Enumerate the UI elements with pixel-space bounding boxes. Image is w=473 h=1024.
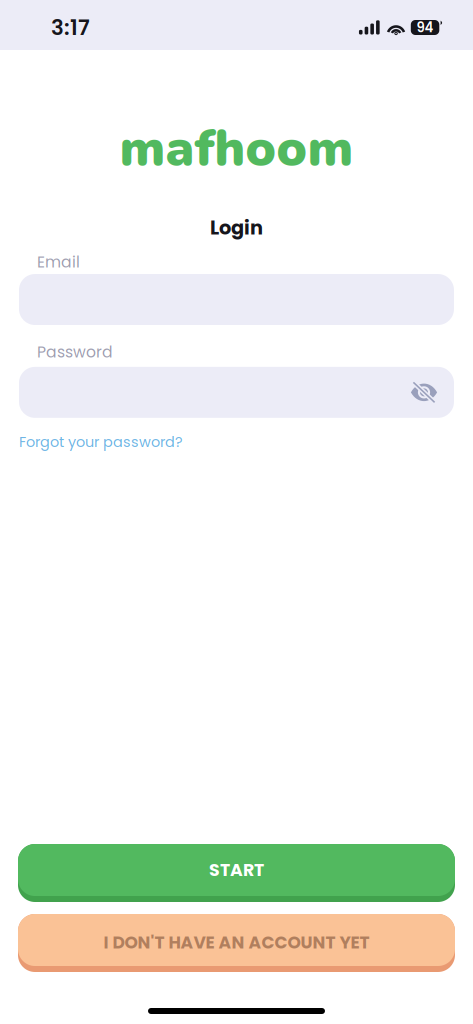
staticText: Login (210, 214, 263, 241)
staticText: 3:17 (51, 13, 90, 42)
staticText: START (209, 858, 264, 882)
button[interactable]: Show password (410, 381, 438, 403)
staticText: mafhoom (119, 114, 353, 183)
staticText: Forgot your password? (19, 432, 183, 452)
staticText: Email (37, 251, 80, 273)
staticText: Password (37, 341, 113, 363)
staticText: I DON'T HAVE AN ACCOUNT YET (103, 931, 369, 954)
button[interactable]: Forgot your password? (19, 432, 183, 452)
staticText: 94 (417, 18, 434, 37)
button[interactable]: I DON'T HAVE AN ACCOUNT YET (18, 914, 455, 972)
button[interactable]: START (18, 844, 455, 902)
